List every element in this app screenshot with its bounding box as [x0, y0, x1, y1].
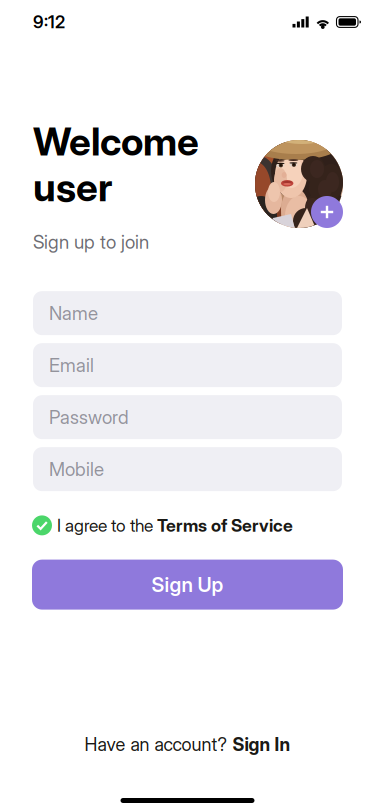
staticText: Have an account? Sign In	[84, 734, 290, 755]
staticText: Sign Up	[151, 572, 223, 597]
staticText: Sign up to join	[33, 231, 149, 253]
staticText: 9:12	[33, 11, 65, 32]
button[interactable]: Mobile	[33, 447, 342, 491]
staticText: Name	[49, 302, 98, 324]
button[interactable]: Have an account? Sign In	[84, 734, 290, 755]
staticText: Mobile	[49, 458, 104, 480]
staticText: I agree to the Terms of Service	[57, 515, 293, 536]
button[interactable]: Sign Up	[0, 536, 375, 610]
button[interactable]: Email	[33, 343, 342, 387]
button[interactable]: I agree to the Terms of Service	[0, 491, 375, 536]
button[interactable]: Name	[33, 291, 342, 335]
button[interactable]: Password	[33, 395, 342, 439]
staticText: user	[33, 164, 112, 211]
staticText: Email	[49, 354, 94, 376]
staticText: Password	[49, 406, 129, 428]
staticText: Welcome	[33, 118, 199, 165]
button[interactable]: Add photo	[311, 196, 343, 228]
